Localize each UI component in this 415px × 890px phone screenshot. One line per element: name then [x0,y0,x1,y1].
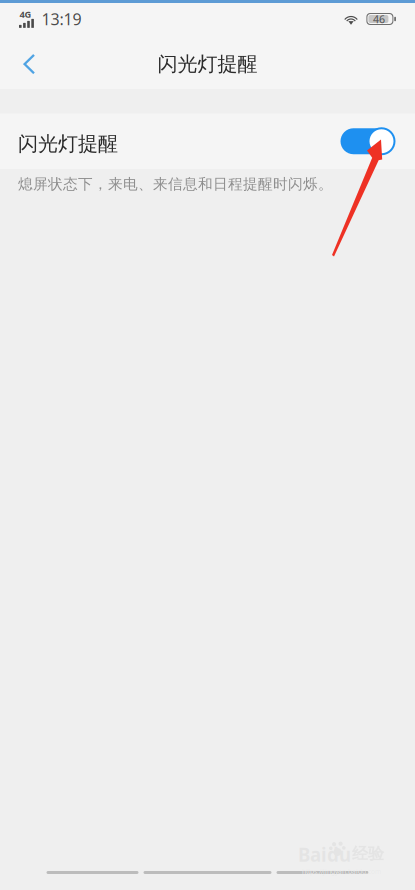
button[interactable]: 主屏幕 [141,862,274,882]
staticText: https://jingyan.baidu.com [302,867,381,876]
button[interactable]: 闪光灯提醒开关 [340,120,394,162]
staticText: 闪光灯提醒 [18,131,118,156]
staticText: Baidu [298,842,351,867]
button[interactable]: 返回 [5,40,53,88]
staticText: 46 [373,12,385,26]
staticText: 闪光灯提醒 [157,52,257,76]
staticText: 13:19 [41,8,81,30]
staticText: 4G [19,8,31,20]
button[interactable]: 返回 [44,862,141,882]
staticText: 经验 [352,844,384,863]
staticText: 熄屏状态下，来电、来信息和日程提醒时闪烁。 [18,175,333,193]
button[interactable]: 最近任务 [274,862,371,882]
